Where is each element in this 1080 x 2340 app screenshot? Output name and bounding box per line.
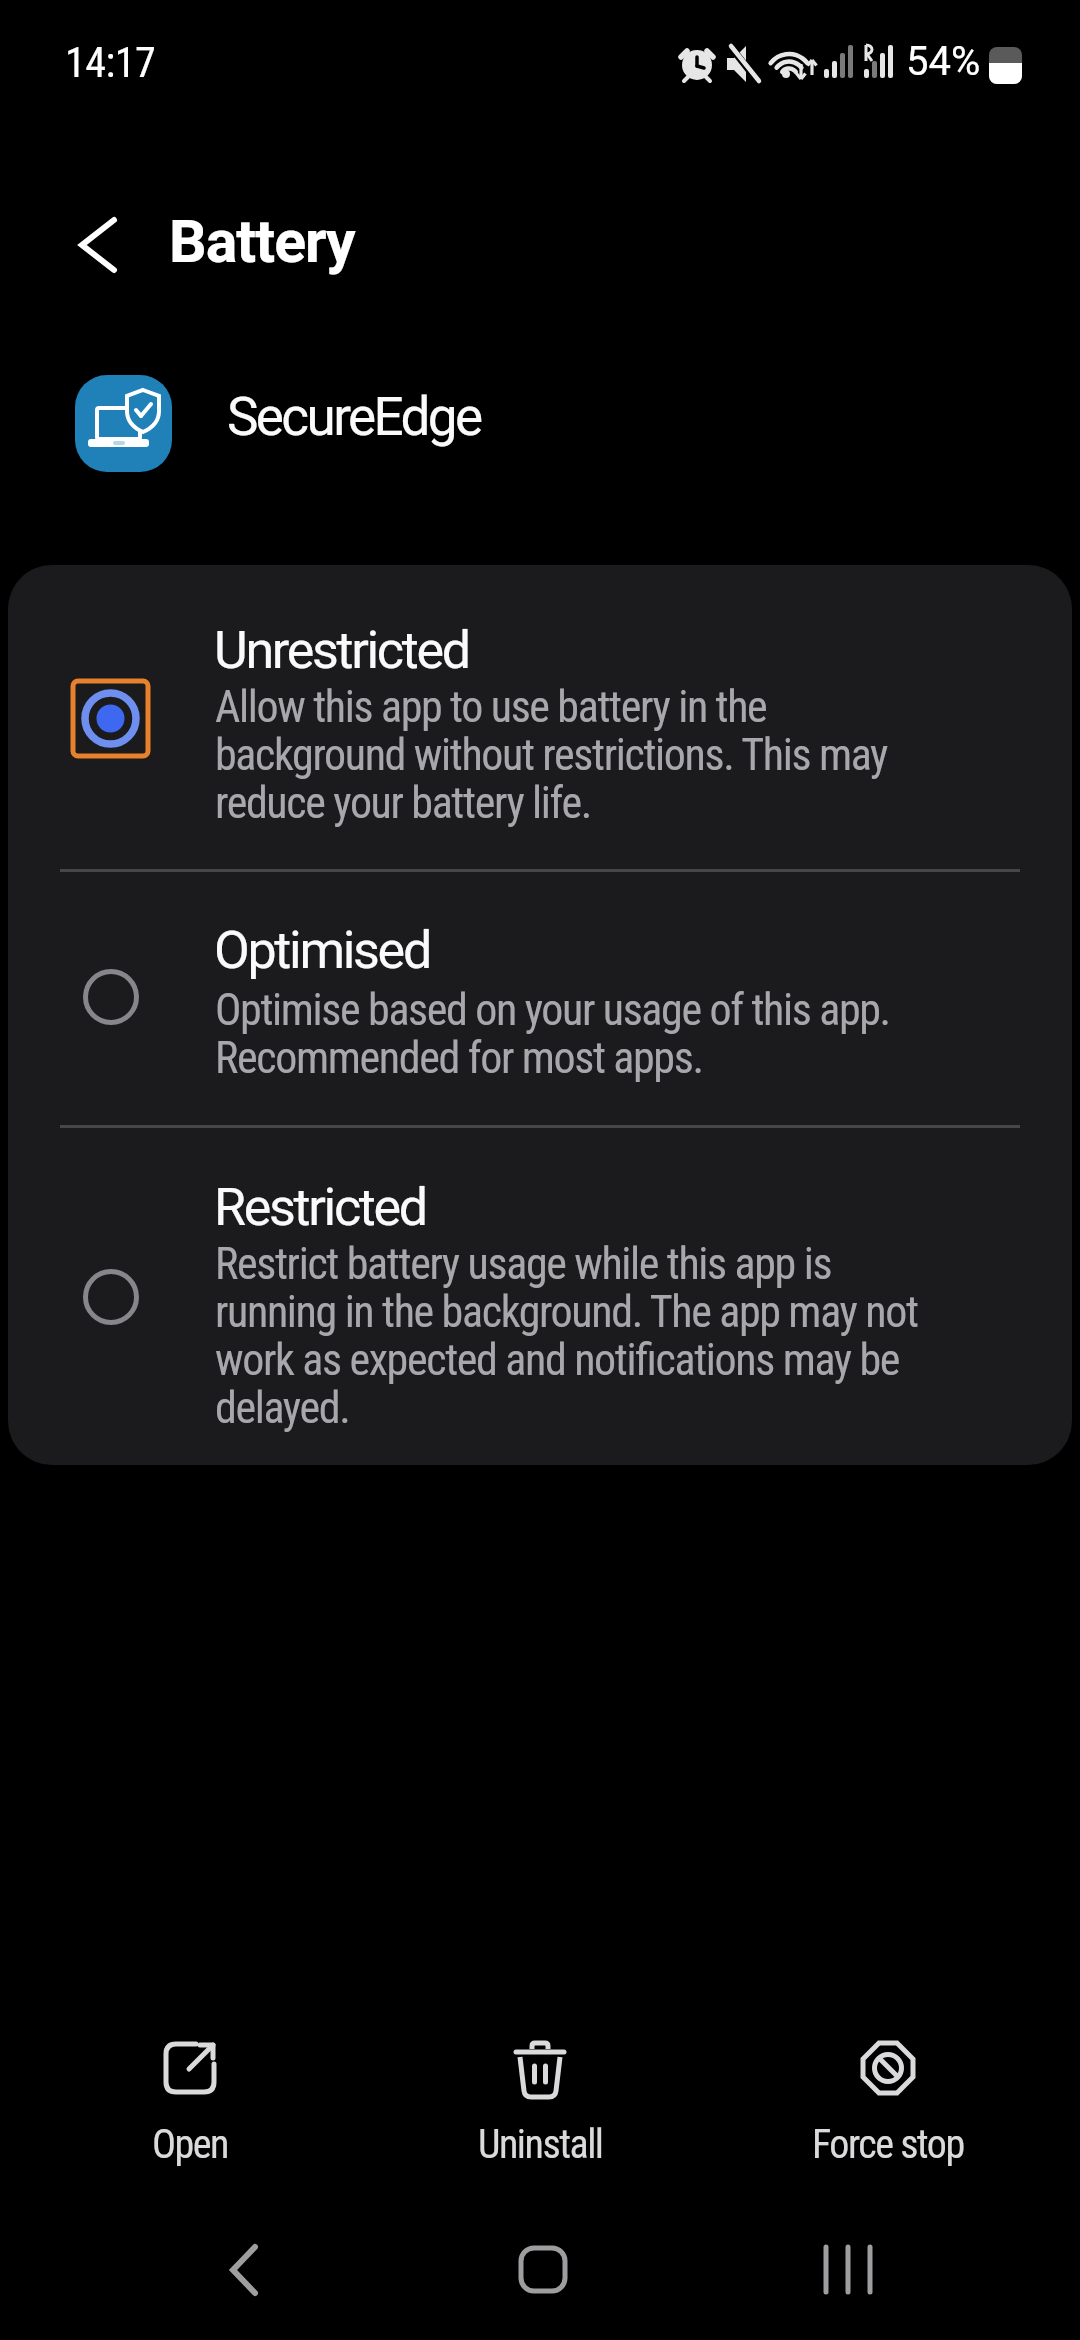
staticText: Unrestricted (214, 620, 469, 681)
staticText: SecureEdge (227, 386, 481, 448)
button[interactable]: Uninstall (440, 2018, 640, 2170)
button[interactable]: Restricted (8, 1127, 1072, 1465)
staticText: 54% (906, 38, 981, 85)
staticText: Open (152, 2121, 228, 2168)
staticText: Allow this app to use battery in the bac… (215, 681, 888, 828)
button[interactable] (185, 2212, 300, 2327)
button[interactable]: Unrestricted (8, 565, 1072, 871)
button[interactable] (790, 2212, 905, 2327)
staticText: Optimised (214, 920, 430, 981)
staticText: Force stop (812, 2121, 964, 2168)
staticText: Battery (169, 207, 355, 276)
button[interactable]: Force stop (788, 2018, 988, 2170)
button[interactable]: Open (90, 2018, 290, 2170)
staticText: Uninstall (478, 2121, 603, 2168)
staticText: 14:17 (65, 38, 156, 87)
staticText: Restricted (214, 1177, 426, 1238)
button[interactable] (55, 205, 135, 285)
staticText: Restrict battery usage while this app is… (215, 1238, 918, 1433)
staticText: Optimise based on your usage of this app… (215, 984, 890, 1083)
button[interactable]: Optimised (8, 873, 1072, 1125)
button[interactable] (485, 2212, 600, 2327)
